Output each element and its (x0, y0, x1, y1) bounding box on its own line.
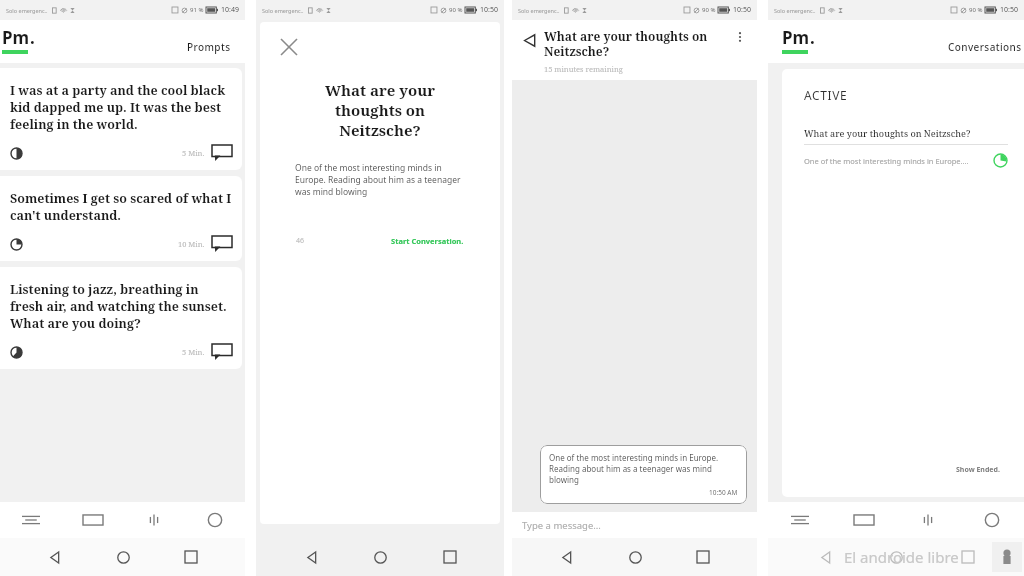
staticText: Conversations (948, 40, 1022, 54)
staticText: . (810, 26, 815, 49)
staticText: Prompts (187, 40, 231, 54)
button[interactable]: What are your thoughts on Neitzsche? (782, 127, 1024, 168)
button[interactable]: Close (278, 36, 300, 58)
button[interactable]: Home (108, 542, 138, 572)
staticText: One of the most interesting minds in Eur… (295, 162, 465, 198)
staticText: 10:50 (480, 5, 498, 15)
staticText: 5 Min. (182, 148, 205, 158)
staticText: Solo emergenc.. (262, 7, 304, 14)
button[interactable]: Back (296, 542, 326, 572)
button[interactable]: Cards (62, 502, 123, 538)
button[interactable]: Home (620, 542, 650, 572)
button[interactable]: Pm (2, 26, 35, 54)
button[interactable]: Back (520, 31, 538, 49)
button[interactable]: Menu (768, 502, 832, 538)
staticText: I was at a party and the cool black kid … (10, 82, 232, 133)
button[interactable]: Back (39, 542, 69, 572)
button[interactable]: Back (810, 542, 840, 572)
staticText: 90 % (702, 6, 716, 14)
staticText: 91 % (190, 6, 204, 14)
staticText: Type a message... (522, 519, 601, 532)
staticText: One of the most interesting minds in Eur… (804, 156, 987, 166)
button[interactable]: Menu (0, 502, 62, 538)
button[interactable]: Recents (435, 542, 465, 572)
button[interactable]: Home (365, 542, 395, 572)
button[interactable]: Comment (212, 236, 232, 252)
button[interactable]: Comment (212, 344, 232, 360)
button[interactable]: Recents (688, 542, 718, 572)
button[interactable]: Home (881, 542, 911, 572)
button[interactable]: Type a message... (512, 512, 757, 538)
button[interactable]: Recents (176, 542, 206, 572)
staticText: Show Ended. (956, 465, 1000, 475)
button[interactable]: Show Ended. (782, 465, 1024, 497)
button[interactable]: Back (551, 542, 581, 572)
button[interactable]: Profile (960, 502, 1024, 538)
staticText: 46 (296, 236, 305, 246)
staticText: 10:50 AM (709, 488, 738, 497)
staticText: Listening to jazz, breathing in fresh ai… (10, 281, 232, 332)
staticText: Pm (782, 26, 810, 49)
staticText: Start Conversation. (391, 236, 464, 246)
button[interactable]: Comment (212, 145, 232, 161)
staticText: What are your thoughts on Neitzsche? (544, 28, 731, 59)
button[interactable]: One of the most interesting minds in Eur… (540, 445, 747, 504)
staticText: Solo emergenc.. (774, 7, 816, 14)
staticText: What are your thoughts on Neitzsche? (296, 80, 464, 140)
button[interactable]: More options (731, 28, 749, 46)
staticText: ACTIVE (804, 87, 848, 103)
staticText: . (30, 26, 35, 49)
button[interactable]: Pm (782, 26, 815, 54)
button[interactable]: Sometimes I get so scared of what I can'… (0, 176, 242, 261)
staticText: One of the most interesting minds in Eur… (549, 452, 738, 485)
staticText: Sometimes I get so scared of what I can'… (10, 190, 232, 224)
button[interactable]: Listening to jazz, breathing in fresh ai… (0, 267, 242, 369)
staticText: El androide libre (844, 547, 959, 567)
button[interactable]: Start Conversation. (391, 236, 464, 246)
staticText: Solo emergenc.. (6, 7, 48, 14)
staticText: Solo emergenc.. (518, 7, 560, 14)
button[interactable]: Prompts (187, 40, 231, 54)
staticText: 15 minutes remaining (544, 64, 623, 74)
button[interactable]: Activity (896, 502, 960, 538)
button[interactable]: Profile (184, 502, 245, 538)
button[interactable]: Activity (123, 502, 184, 538)
button[interactable]: Conversations (948, 40, 1022, 54)
staticText: 10:50 (1000, 5, 1018, 15)
staticText: 10:49 (221, 5, 239, 15)
staticText: Pm (2, 26, 30, 49)
button[interactable]: Cards (832, 502, 896, 538)
staticText: 5 Min. (182, 347, 205, 357)
staticText: 10:50 (733, 5, 751, 15)
button[interactable]: I was at a party and the cool black kid … (0, 68, 242, 170)
staticText: What are your thoughts on Neitzsche? (804, 127, 971, 139)
staticText: 90 % (449, 6, 463, 14)
button[interactable]: Recents (953, 542, 983, 572)
staticText: 90 % (969, 6, 983, 14)
staticText: 10 Min. (178, 239, 205, 249)
